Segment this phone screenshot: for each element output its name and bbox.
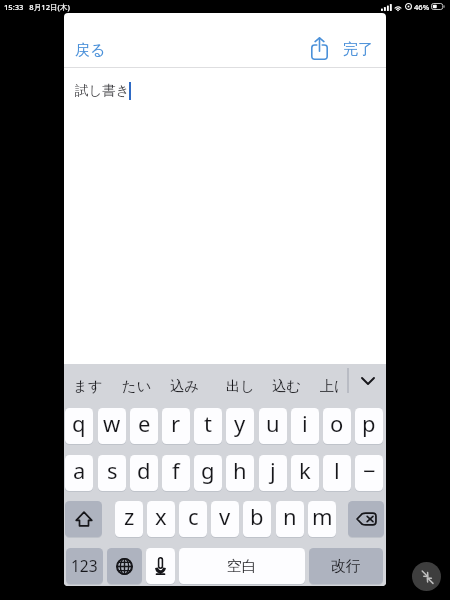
staticText: 込み (170, 377, 199, 395)
button[interactable]: g (194, 455, 222, 491)
button[interactable]: 戻る (68, 36, 112, 64)
button[interactable]: e (130, 408, 158, 444)
button[interactable]: y (226, 408, 254, 444)
staticText: p (362, 408, 376, 438)
staticText: たい (122, 377, 152, 395)
staticText: u (266, 408, 280, 438)
button[interactable]: Shrink window (412, 562, 441, 591)
button[interactable]: t (194, 408, 222, 444)
button[interactable]: r (162, 408, 190, 444)
staticText: g (201, 455, 215, 485)
staticText: f (172, 455, 180, 485)
button[interactable]: n (276, 501, 304, 537)
staticText: 改行 (331, 557, 361, 576)
button[interactable]: 完了 (336, 35, 380, 63)
button[interactable]: i (291, 408, 319, 444)
button[interactable]: f (162, 455, 190, 491)
staticText: k (299, 455, 311, 485)
staticText: 123 (71, 555, 98, 576)
button[interactable]: u (259, 408, 287, 444)
button[interactable]: m (308, 501, 336, 537)
button[interactable]: ます (65, 372, 110, 400)
staticText: c (188, 501, 199, 531)
button[interactable]: s (98, 455, 126, 491)
button[interactable]: Switch language (107, 548, 142, 584)
button[interactable]: c (179, 501, 207, 537)
staticText: ます (73, 377, 103, 395)
button[interactable]: たい (114, 372, 159, 400)
button[interactable]: Voice input (146, 548, 175, 584)
staticText: a (73, 455, 86, 485)
staticText: y (234, 408, 246, 438)
button[interactable]: o (323, 408, 351, 444)
button[interactable]: 込む (264, 372, 309, 400)
staticText: 試し書き (75, 82, 130, 99)
button[interactable]: z (115, 501, 143, 537)
button[interactable]: x (147, 501, 175, 537)
staticText: 15:33 8月12日(木) (4, 2, 70, 12)
button[interactable]: a (65, 455, 93, 491)
staticText: j (270, 455, 276, 485)
button[interactable]: − (355, 455, 383, 491)
staticText: 空白 (227, 557, 257, 576)
button[interactable]: l (323, 455, 351, 491)
staticText: h (233, 455, 247, 485)
staticText: o (330, 408, 344, 438)
staticText: w (103, 408, 121, 438)
staticText: b (250, 501, 264, 531)
staticText: z (124, 501, 135, 531)
staticText: 出し (226, 377, 255, 395)
button[interactable]: b (243, 501, 271, 537)
button[interactable]: h (226, 455, 254, 491)
button[interactable]: 出し (218, 372, 263, 400)
button[interactable]: w (98, 408, 126, 444)
staticText: 込む (272, 377, 301, 395)
button[interactable]: Share (300, 29, 338, 67)
button[interactable]: k (291, 455, 319, 491)
staticText: i (302, 408, 308, 438)
staticText: n (283, 501, 297, 531)
staticText: m (312, 501, 333, 531)
staticText: v (219, 501, 231, 531)
button[interactable]: Backspace (348, 501, 384, 537)
button[interactable]: 123 (66, 548, 103, 584)
button[interactable]: d (130, 455, 158, 491)
staticText: x (155, 501, 167, 531)
staticText: l (334, 455, 340, 485)
staticText: t (204, 408, 212, 438)
staticText: 46% (414, 2, 430, 12)
button[interactable]: j (259, 455, 287, 491)
staticText: − (363, 455, 376, 485)
staticText: 完了 (343, 40, 373, 59)
button[interactable]: Shift (65, 501, 102, 537)
button[interactable]: 改行 (309, 548, 383, 584)
button[interactable]: 空白 (179, 548, 305, 584)
button[interactable]: 上げ (312, 372, 339, 400)
button[interactable]: q (65, 408, 93, 444)
staticText: s (107, 455, 118, 485)
button[interactable]: Hide keyboard (352, 368, 384, 393)
staticText: e (138, 408, 151, 438)
staticText: r (171, 408, 181, 438)
button[interactable]: v (211, 501, 239, 537)
staticText: d (137, 455, 151, 485)
button[interactable]: p (355, 408, 383, 444)
staticText: 戻る (75, 41, 106, 60)
staticText: q (72, 408, 86, 438)
staticText: 上げ (320, 377, 339, 395)
button[interactable]: 込み (162, 372, 207, 400)
